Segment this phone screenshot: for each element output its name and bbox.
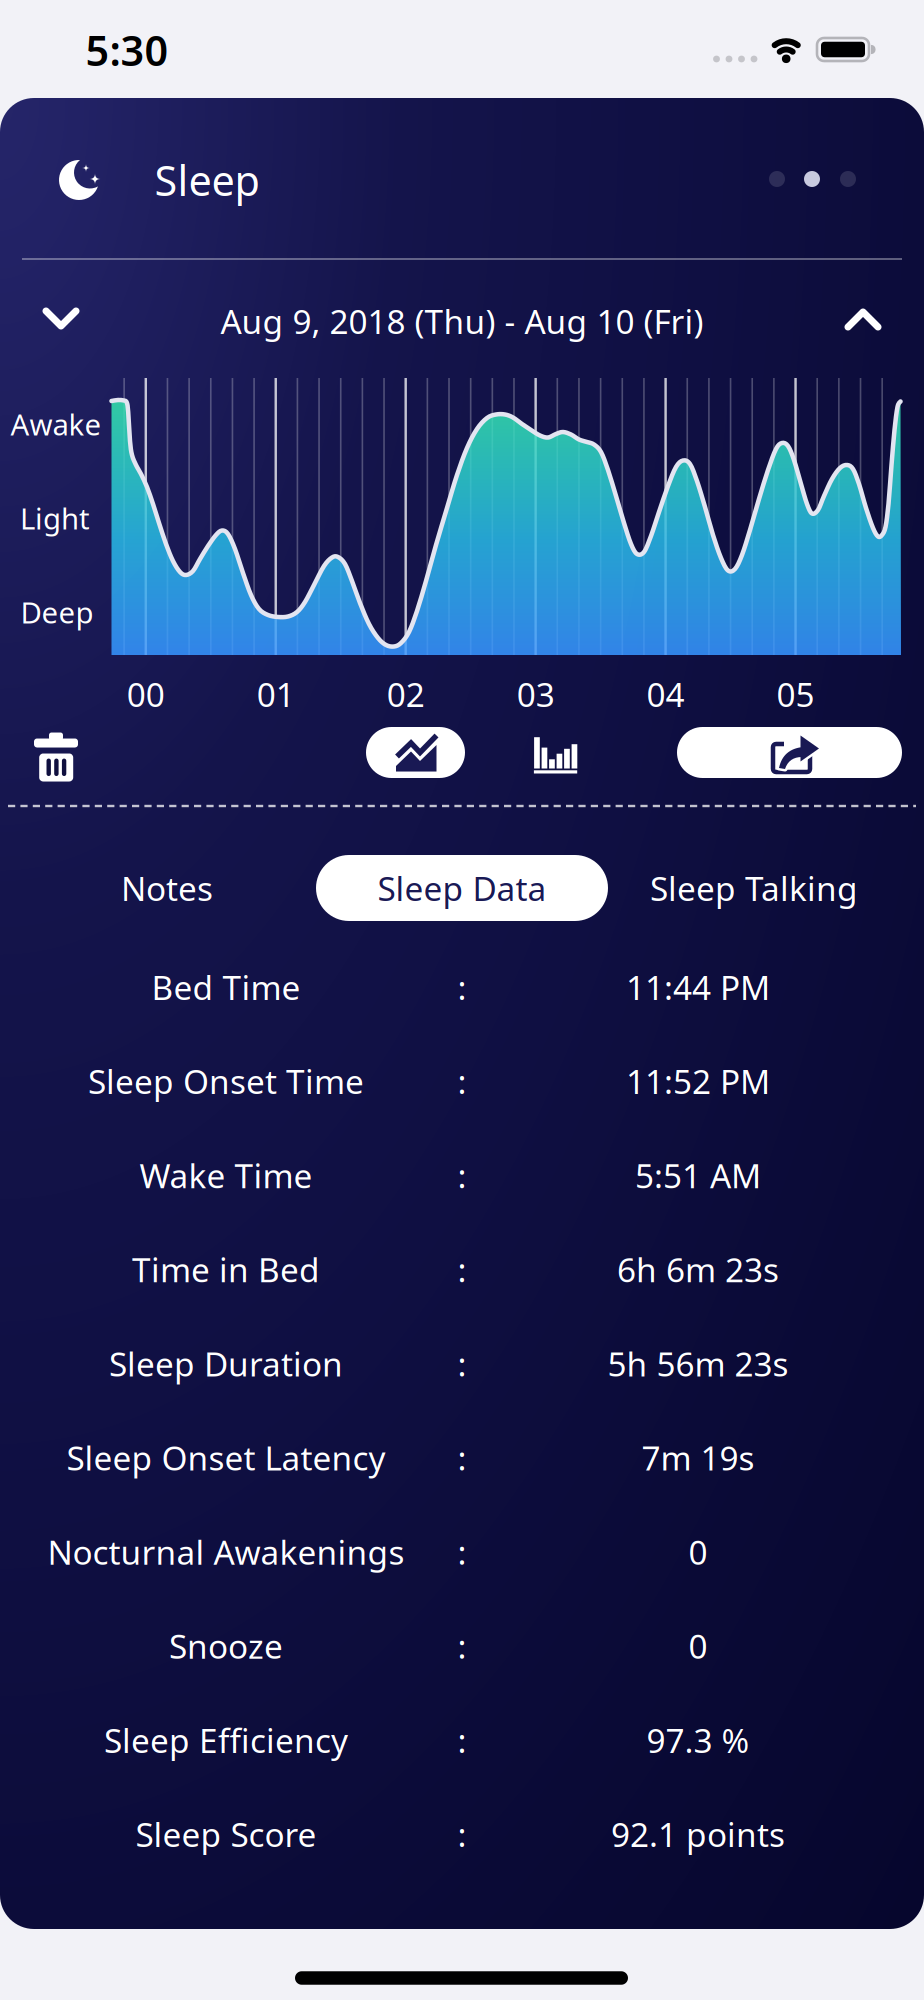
staticText: Sleep Duration [109,1341,343,1386]
staticText: Snooze [169,1624,283,1668]
staticText: 97.3 % [646,1718,749,1762]
staticText: : [457,965,466,1009]
button[interactable]: Previous day [39,301,83,337]
button[interactable]: Delete [30,729,82,784]
button[interactable]: Sleep Talking [644,855,864,921]
staticText: : [457,1718,466,1762]
staticText: 0 [688,1624,707,1668]
staticText: 7m 19s [641,1435,754,1480]
staticText: 5:30 [85,23,168,77]
staticText: Sleep Onset Latency [66,1435,385,1480]
staticText: Sleep Talking [650,866,858,910]
button[interactable]: Line chart [366,727,465,778]
staticText: 04 [647,672,685,716]
staticText: Sleep Score [135,1812,316,1856]
staticText: : [457,1059,466,1103]
staticText: Awake [10,404,101,443]
staticText: : [457,1341,466,1386]
staticText: 01 [257,672,295,716]
staticText: Light [20,498,90,537]
staticText: 05 [776,672,814,716]
staticText: Sleep [154,153,259,207]
staticText: : [457,1624,466,1668]
staticText: Wake Time [139,1153,312,1197]
staticText: 00 [127,672,165,716]
staticText: Bed Time [151,965,300,1009]
staticText: : [457,1530,466,1574]
staticText: 03 [517,672,555,716]
staticText: Sleep Efficiency [104,1718,348,1762]
button[interactable]: Next day [841,301,885,337]
staticText: Nocturnal Awakenings [47,1530,404,1574]
staticText: Deep [20,592,93,631]
staticText: Aug 9, 2018 (Thu) - Aug 10 (Fri) [220,299,703,343]
staticText: Notes [121,866,213,910]
staticText: 11:52 PM [626,1059,770,1103]
staticText: 6h 6m 23s [617,1247,779,1292]
button[interactable]: Share [677,727,902,778]
button[interactable]: Bar chart [530,732,580,778]
staticText: 5h 56m 23s [607,1341,788,1386]
staticText: 0 [688,1530,707,1574]
staticText: Sleep Data [377,866,546,910]
button[interactable]: Notes [87,855,247,921]
staticText: Sleep Onset Time [88,1059,364,1103]
button[interactable]: Menu [57,156,103,202]
button[interactable]: Sleep Data [316,855,608,921]
staticText: 92.1 points [611,1812,785,1856]
staticText: Time in Bed [132,1247,320,1292]
staticText: 5:51 AM [635,1153,761,1197]
staticText: 11:44 PM [626,965,770,1009]
staticText: : [457,1153,466,1197]
staticText: 02 [387,672,425,716]
staticText: : [457,1435,466,1480]
staticText: : [457,1247,466,1292]
staticText: : [457,1812,466,1856]
